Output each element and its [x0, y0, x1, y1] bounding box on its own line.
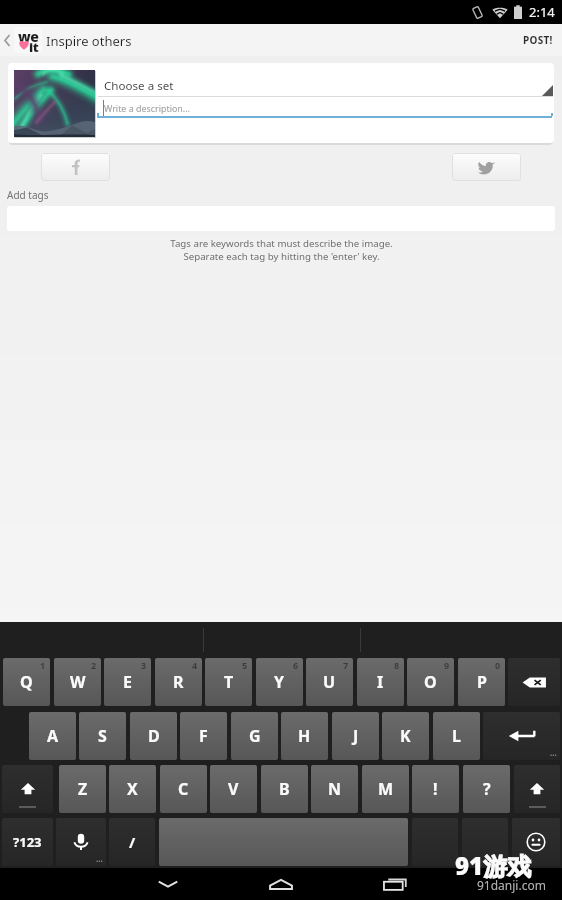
button[interactable]: Share on Facebook	[41, 153, 110, 181]
other: Back	[2, 34, 12, 47]
staticText: ?	[483, 778, 491, 800]
button[interactable]: /	[109, 818, 155, 866]
button[interactable]: Y	[256, 658, 303, 706]
staticText: L	[452, 725, 461, 747]
button[interactable]: !	[412, 765, 459, 813]
other: Shift	[527, 779, 547, 799]
staticText: U	[323, 671, 336, 693]
staticText: 91游戏	[455, 849, 532, 882]
button[interactable]	[412, 818, 458, 866]
staticText: it	[29, 38, 39, 56]
button[interactable]: Q	[3, 658, 50, 706]
staticText: R	[173, 671, 184, 693]
other: Shift	[18, 779, 38, 799]
staticText: M	[378, 778, 394, 800]
button[interactable]: Recent apps	[371, 868, 419, 900]
staticText: N	[328, 778, 342, 800]
button[interactable]: POST!	[514, 24, 562, 56]
button[interactable]: B	[261, 765, 308, 813]
button[interactable]: Shift	[514, 765, 560, 813]
staticText: /	[129, 832, 136, 852]
staticText: G	[249, 725, 261, 747]
button[interactable]: Home	[257, 868, 305, 900]
button[interactable]: K	[382, 712, 429, 760]
staticText: Q	[20, 671, 33, 693]
button[interactable]: Share on Twitter	[452, 153, 521, 181]
staticText: 4	[192, 659, 198, 671]
staticText: C	[178, 778, 189, 800]
staticText: W	[70, 671, 86, 693]
button[interactable]: D	[130, 712, 177, 760]
staticText: K	[400, 725, 411, 747]
button[interactable]: F	[180, 712, 227, 760]
staticText: 2	[91, 659, 97, 671]
button[interactable]: Z	[59, 765, 106, 813]
staticText: we	[18, 27, 39, 46]
staticText: 6	[293, 659, 299, 671]
staticText: 2:14	[529, 3, 555, 21]
button[interactable]: Back	[0, 24, 42, 56]
button[interactable]: ...	[56, 818, 106, 866]
staticText: X	[127, 778, 138, 800]
button[interactable]: M	[362, 765, 409, 813]
staticText: ...	[96, 853, 103, 864]
button[interactable]: T	[205, 658, 252, 706]
other: Backspace	[521, 674, 547, 691]
button[interactable]: V	[210, 765, 257, 813]
button[interactable]: Shift	[2, 765, 53, 813]
button[interactable]: L	[433, 712, 480, 760]
button[interactable]: W	[54, 658, 101, 706]
button[interactable]: E	[104, 658, 151, 706]
staticText: Separate each tag by hitting the 'enter'…	[183, 250, 380, 263]
staticText: 5	[242, 659, 248, 671]
button[interactable]: ...	[483, 712, 560, 760]
button[interactable]: A	[29, 712, 76, 760]
button[interactable]: G	[231, 712, 278, 760]
staticText: T	[224, 671, 234, 693]
button[interactable]: X	[109, 765, 156, 813]
button[interactable]: Hide keyboard	[144, 868, 192, 900]
staticText: V	[228, 778, 239, 800]
staticText: Y	[274, 671, 285, 693]
button[interactable]: ?123	[2, 818, 53, 866]
staticText: E	[123, 671, 132, 693]
staticText: O	[424, 671, 437, 693]
staticText: I	[377, 671, 384, 693]
staticText: POST!	[523, 33, 553, 47]
staticText: F	[199, 725, 208, 747]
other: Enter	[507, 726, 537, 746]
button[interactable]: R	[155, 658, 202, 706]
staticText: 9	[444, 659, 450, 671]
button[interactable]: ?	[463, 765, 510, 813]
button[interactable]: Backspace	[508, 658, 560, 706]
staticText: ?123	[13, 833, 42, 851]
button[interactable]: Emoji	[512, 818, 560, 866]
staticText: ...	[550, 747, 557, 758]
staticText: D	[148, 725, 160, 747]
button[interactable]: H	[281, 712, 328, 760]
button[interactable]	[462, 818, 508, 866]
button[interactable]: S	[79, 712, 126, 760]
staticText: Add tags	[7, 188, 49, 202]
button[interactable]: P	[458, 658, 505, 706]
button[interactable]: N	[311, 765, 358, 813]
staticText: 8	[394, 659, 400, 671]
staticText: 7	[343, 659, 349, 671]
staticText: H	[298, 725, 311, 747]
button[interactable]: Choose a set	[96, 63, 554, 96]
button[interactable]	[159, 818, 408, 866]
button[interactable]: U	[306, 658, 353, 706]
button[interactable]: C	[160, 765, 207, 813]
button[interactable]: O	[407, 658, 454, 706]
staticText: A	[47, 725, 59, 747]
staticText: Choose a set	[104, 78, 174, 94]
button[interactable]: J	[332, 712, 379, 760]
button[interactable]: I	[357, 658, 404, 706]
staticText: 1	[40, 659, 46, 671]
staticText: Write a description...	[104, 102, 190, 114]
staticText: 0	[495, 659, 501, 671]
